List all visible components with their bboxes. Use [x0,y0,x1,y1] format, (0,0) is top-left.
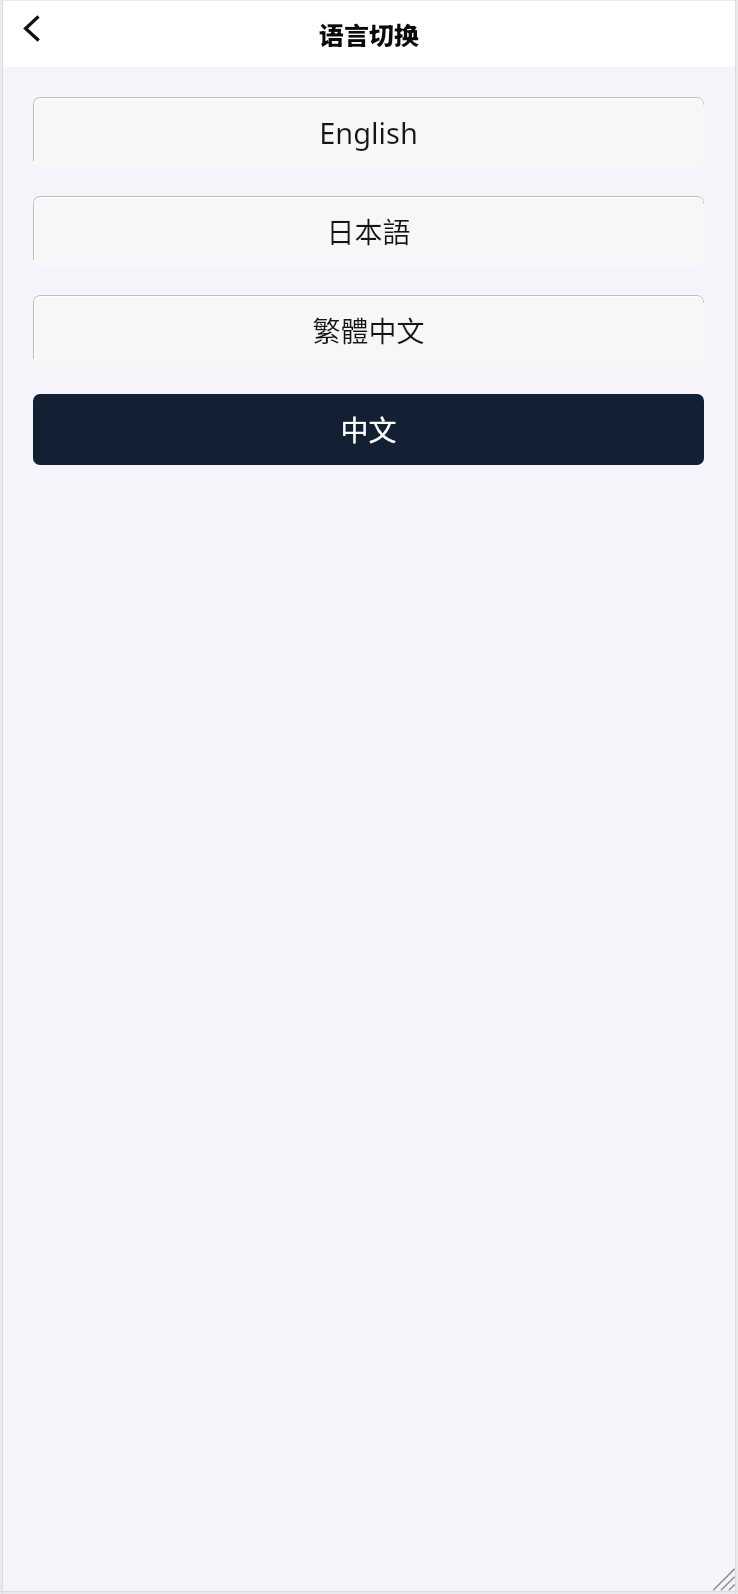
staticText: 繁體中文 [312,310,425,351]
button[interactable]: English [33,97,704,168]
button[interactable]: Back [3,1,57,57]
button[interactable]: 中文 [33,394,704,465]
staticText: 语言切换 [319,16,420,52]
staticText: 中文 [340,409,397,450]
staticText: English [319,113,418,152]
button[interactable]: 繁體中文 [33,295,704,366]
button[interactable]: 日本語 [33,196,704,267]
staticText: 日本語 [326,211,411,252]
